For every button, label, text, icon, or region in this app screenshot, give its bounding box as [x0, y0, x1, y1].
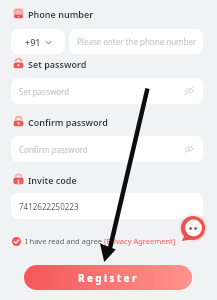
staticText: +91: [25, 36, 41, 48]
staticText: Please enter the phone number: [77, 36, 197, 47]
staticText: Confirm password: [28, 116, 108, 128]
staticText: Invite code: [28, 174, 77, 186]
staticText: Confirm password: [19, 144, 88, 155]
button[interactable]: Please enter the phone number: [69, 29, 203, 54]
staticText: [Privacy Agreement]: [104, 236, 176, 246]
staticText: 7412622250223: [19, 201, 79, 212]
staticText: Phone number: [28, 8, 94, 20]
staticText: Set password: [19, 86, 70, 97]
button[interactable]: I have read and agree: [12, 234, 176, 248]
button[interactable]: Register: [24, 265, 192, 290]
button[interactable]: Show password: [183, 85, 195, 97]
button[interactable]: Show password: [183, 143, 195, 155]
button[interactable]: 7412622250223: [11, 193, 203, 219]
staticText: I have read and agree: [25, 236, 104, 246]
button[interactable]: Confirm password: [11, 136, 203, 162]
button[interactable]: Set password: [11, 78, 203, 104]
button[interactable]: +91: [11, 29, 65, 54]
staticText: Set password: [28, 58, 87, 70]
staticText: Register: [78, 271, 139, 285]
button[interactable]: Customer service: [179, 214, 207, 242]
